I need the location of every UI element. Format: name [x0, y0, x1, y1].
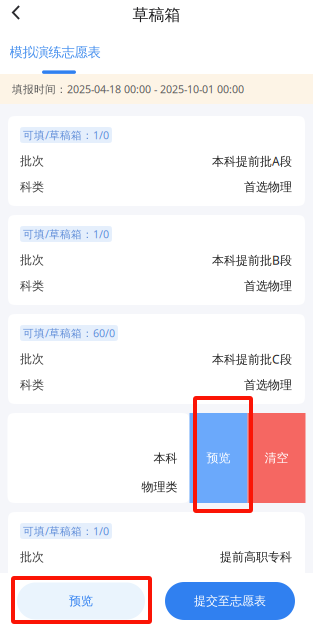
staticText: 模拟演练志愿表 [9, 44, 100, 60]
staticText: 科类 [20, 378, 44, 392]
staticText: 本科提前批C段 [212, 351, 292, 367]
staticText: 提交至志愿表 [194, 594, 266, 608]
staticText: 首选物理 [244, 180, 292, 194]
staticText: 批次 [20, 550, 44, 564]
staticText: 首选物理 [244, 279, 292, 293]
staticText: 本科提前批A段 [212, 153, 292, 169]
staticText: 可填/草稿箱：1/0 [23, 128, 109, 142]
staticText: 物理类 [141, 480, 177, 494]
staticText: 批次 [20, 253, 44, 267]
staticText: 科类 [20, 180, 44, 194]
staticText: 科类 [20, 279, 44, 293]
staticText: 草稿箱 [132, 5, 180, 25]
button[interactable]: 可填/草稿箱：60/0 [8, 314, 305, 404]
button[interactable]: 提交至志愿表 [165, 582, 295, 620]
button[interactable]: 模拟演练志愿表 [4, 33, 106, 74]
staticText: 可填/草稿箱：1/0 [23, 227, 109, 241]
staticText: 提前高职专科 [220, 550, 292, 564]
button[interactable]: 可填/草稿箱：1/0 [8, 512, 305, 602]
staticText: 预览 [206, 451, 230, 465]
staticText: 首选物理 [244, 378, 292, 392]
button[interactable]: 清空 [247, 413, 305, 503]
staticText: 可填/草稿箱：1/0 [23, 524, 109, 538]
staticText: 本科 [153, 451, 177, 466]
button[interactable]: 可填/草稿箱：1/0 [8, 116, 305, 206]
staticText: 批次 [20, 154, 44, 168]
button[interactable]: 预览 [17, 582, 145, 619]
staticText: 清空 [264, 451, 288, 465]
button[interactable]: 本科 [7, 413, 189, 503]
button[interactable]: 可填/草稿箱：1/0 [8, 215, 305, 305]
staticText: 填报时间：2025-04-18 00:00 - 2025-10-01 00:00 [12, 82, 244, 96]
staticText: 可填/草稿箱：60/0 [23, 326, 115, 340]
button[interactable]: 预览 [189, 413, 247, 503]
button[interactable]: 返回 [0, 0, 32, 33]
staticText: 批次 [20, 352, 44, 366]
staticText: 预览 [69, 594, 93, 608]
staticText: 本科提前批B段 [212, 252, 292, 268]
